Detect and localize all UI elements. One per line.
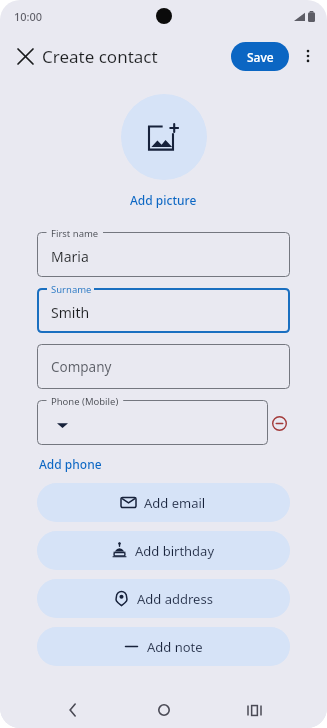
button[interactable]: Recent apps [237, 693, 271, 727]
button[interactable]: Add email [37, 483, 290, 522]
staticText: Add email [144, 494, 206, 512]
staticText: Add phone [39, 456, 102, 472]
button[interactable]: Home [147, 693, 181, 727]
button[interactable]: More options [293, 41, 323, 71]
button[interactable]: Remove phone [268, 412, 290, 434]
button[interactable]: Company [37, 344, 290, 389]
button[interactable]: First name [37, 232, 290, 277]
staticText: Add note [147, 638, 203, 656]
staticText: 10:00 [14, 9, 43, 24]
button[interactable]: Add address [37, 579, 290, 618]
button[interactable]: Save [231, 42, 289, 71]
staticText: Maria [51, 247, 89, 266]
button[interactable]: Add phone [37, 454, 104, 474]
button[interactable]: Add note [37, 627, 290, 666]
staticText: Surname [51, 283, 92, 296]
staticText: Smith [51, 303, 90, 322]
staticText: Phone (Mobile) [51, 395, 119, 408]
button[interactable]: Surname [37, 288, 290, 333]
button[interactable]: Add picture [121, 94, 207, 180]
staticText: Add address [137, 590, 213, 608]
button[interactable]: Add birthday [37, 531, 290, 570]
staticText: Save [247, 49, 274, 65]
button[interactable]: Back [56, 693, 90, 727]
staticText: Add picture [130, 192, 197, 208]
button[interactable]: Phone (Mobile) [37, 400, 268, 445]
button[interactable]: Add picture [124, 190, 203, 210]
staticText: Company [51, 358, 112, 376]
staticText: Create contact [42, 45, 158, 68]
staticText: Add birthday [135, 542, 215, 560]
staticText: First name [51, 227, 99, 240]
button[interactable]: Close [8, 39, 42, 73]
